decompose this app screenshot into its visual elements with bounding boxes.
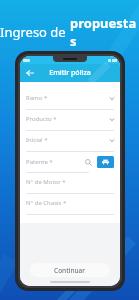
staticText: Continuar <box>54 266 86 275</box>
staticText: N° de Motor * <box>26 178 66 186</box>
staticText: Ramo * <box>26 94 48 102</box>
button[interactable]: Patente * <box>26 154 83 170</box>
staticText: Ingreso de <box>0 23 70 41</box>
button[interactable]: Continuar <box>30 263 110 277</box>
staticText: Patente * <box>26 158 53 166</box>
button[interactable]: Producto * <box>26 110 114 131</box>
button[interactable]: Buscar <box>83 157 94 168</box>
staticText: Emitir póliza <box>49 68 91 78</box>
button[interactable]: Inicial * <box>26 131 114 152</box>
button[interactable]: Buscar patente <box>97 156 114 168</box>
staticText: Inicial * <box>26 136 48 144</box>
button[interactable]: N° de Motor * <box>26 173 114 194</box>
button[interactable]: Ramo * <box>26 89 114 110</box>
staticText: propuestas <box>70 14 139 50</box>
button[interactable]: N° de Chasis * <box>26 194 114 215</box>
button[interactable]: Back <box>24 67 36 79</box>
staticText: N° de Chasis * <box>26 199 67 207</box>
staticText: Producto * <box>26 115 57 123</box>
